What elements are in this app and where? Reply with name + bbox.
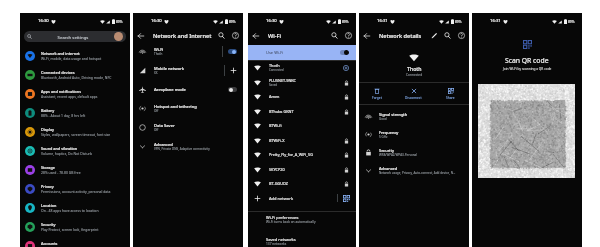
staticText: Mobile network bbox=[154, 66, 185, 71]
staticText: VPN, Private DNS, Adaptive connectivity bbox=[154, 147, 210, 151]
button[interactable]: Share bbox=[432, 83, 469, 104]
button[interactable]: Add network bbox=[248, 191, 356, 205]
staticText: Thoth bbox=[154, 52, 163, 56]
staticText: Off bbox=[154, 128, 159, 132]
staticText: Saved bbox=[269, 83, 278, 87]
button[interactable]: Connected devices bbox=[20, 65, 130, 84]
staticText: 89% bbox=[568, 20, 575, 24]
button[interactable]: BTWi-fi bbox=[248, 118, 356, 133]
button[interactable]: Storage bbox=[20, 160, 130, 179]
staticText: Assistant, recent apps, default apps bbox=[41, 94, 98, 99]
staticText: On - 48 apps have access to location bbox=[41, 208, 99, 213]
button[interactable]: Advanced bbox=[133, 137, 243, 156]
staticText: Forget bbox=[372, 96, 382, 100]
button[interactable]: Privacy bbox=[20, 179, 130, 198]
staticText: BTWi-fi bbox=[269, 123, 282, 128]
staticText: Apps and notifications bbox=[41, 89, 82, 94]
button[interactable]: Pretty_Fly_for_A_WiFi_5G bbox=[248, 147, 356, 162]
button[interactable]: Search bbox=[444, 32, 451, 39]
staticText: Bluetooth, Android Auto, Driving mode, N… bbox=[41, 75, 112, 80]
button[interactable]: Forget bbox=[359, 83, 395, 104]
button[interactable]: Toggle Wi-Fi bbox=[228, 49, 237, 54]
button[interactable]: Apps and notifications bbox=[20, 84, 130, 103]
button[interactable]: Amen bbox=[248, 89, 356, 104]
button[interactable]: Sound and vibration bbox=[20, 141, 130, 160]
staticText: Network and internet bbox=[41, 51, 80, 56]
button[interactable]: Battery bbox=[20, 103, 130, 122]
staticText: Security bbox=[379, 148, 394, 153]
button[interactable]: Security bbox=[359, 143, 469, 161]
button[interactable]: Back bbox=[363, 32, 371, 40]
button[interactable]: Network and internet bbox=[20, 46, 130, 65]
staticText: 89% bbox=[342, 20, 349, 24]
staticText: Wi-Fi bbox=[154, 47, 164, 52]
button[interactable]: Back bbox=[252, 32, 260, 40]
staticText: Network usage, Privacy, Auto-connect, Ad… bbox=[379, 171, 456, 175]
button[interactable]: Add bbox=[230, 67, 237, 74]
button[interactable]: Security bbox=[20, 217, 130, 236]
staticText: Wi-Fi, mobile, data usage and hotspot bbox=[41, 56, 102, 61]
staticText: Aeroplane mode bbox=[154, 87, 186, 92]
button[interactable]: Aeroplane mode bbox=[133, 80, 243, 99]
button[interactable]: Saved networks bbox=[248, 237, 356, 246]
button[interactable]: Advanced bbox=[359, 161, 469, 179]
button[interactable]: BT-GGUDZ bbox=[248, 176, 356, 191]
button[interactable]: Signal strength bbox=[359, 107, 469, 125]
staticText: 137 networks bbox=[266, 242, 287, 246]
staticText: 89% bbox=[455, 20, 462, 24]
staticText: Use Wi-Fi bbox=[266, 50, 340, 55]
button[interactable]: SKYCP20 bbox=[248, 162, 356, 177]
staticText: 16:31 bbox=[377, 18, 388, 24]
button[interactable]: Wi-Fi preferences bbox=[248, 212, 356, 227]
button[interactable]: Wi-Fi bbox=[133, 42, 243, 61]
staticText: BTWiFi-X bbox=[269, 138, 285, 143]
button[interactable]: BThubs GKNT bbox=[248, 104, 356, 119]
button[interactable]: Hotspot and tethering bbox=[133, 99, 243, 118]
staticText: Pretty_Fly_for_A_WiFi_5G bbox=[269, 152, 313, 157]
button[interactable]: Search bbox=[218, 32, 225, 39]
button[interactable]: Use Wi-Fi bbox=[248, 45, 356, 60]
staticText: 88% - About 1 day, 8 hrs left bbox=[41, 113, 86, 118]
staticText: Good bbox=[379, 117, 387, 121]
staticText: 16:30 bbox=[38, 18, 49, 24]
staticText: PLUSNET-9NKC bbox=[269, 78, 297, 83]
button[interactable]: Scan QR code bbox=[343, 195, 350, 202]
staticText: Saved networks bbox=[266, 237, 296, 242]
button[interactable]: PLUSNET-9NKC bbox=[248, 75, 356, 90]
staticText: Security bbox=[41, 222, 56, 227]
button[interactable]: Display bbox=[20, 122, 130, 141]
button[interactable]: Disconnect bbox=[395, 83, 432, 104]
staticText: 89% bbox=[116, 20, 123, 24]
staticText: WPA/WPA2/WPA3-Personal bbox=[379, 153, 418, 157]
staticText: Battery bbox=[41, 108, 55, 113]
button[interactable]: Help bbox=[458, 32, 465, 39]
staticText: 28% used - 78.80 GB free bbox=[41, 170, 81, 175]
button[interactable]: BTWiFi-X bbox=[248, 133, 356, 148]
button[interactable]: Back bbox=[137, 32, 145, 40]
staticText: Share bbox=[446, 96, 455, 100]
button[interactable]: Help bbox=[232, 32, 239, 39]
staticText: Sound and vibration bbox=[41, 146, 78, 151]
button[interactable]: Thoth bbox=[248, 60, 356, 75]
staticText: Join Wi-Fi by scanning a QR code bbox=[503, 67, 552, 71]
staticText: Connected bbox=[406, 73, 423, 77]
button[interactable]: Search bbox=[331, 32, 338, 39]
button[interactable]: Data Saver bbox=[133, 118, 243, 137]
button[interactable]: Accounts bbox=[20, 236, 130, 247]
button[interactable]: Mobile network bbox=[133, 61, 243, 80]
staticText: Volume, haptics, Do Not Disturb bbox=[41, 151, 93, 156]
staticText: Disconnect bbox=[405, 96, 422, 100]
staticText: Amen bbox=[269, 94, 280, 99]
button[interactable]: Search settings bbox=[24, 31, 126, 42]
button[interactable]: Toggle aeroplane mode bbox=[228, 87, 237, 92]
button[interactable]: Location bbox=[20, 198, 130, 217]
staticText: Privacy bbox=[41, 184, 54, 189]
button[interactable]: Frequency bbox=[359, 125, 469, 143]
staticText: Search settings bbox=[32, 34, 114, 40]
button[interactable]: Help bbox=[345, 32, 352, 39]
staticText: Accounts bbox=[41, 241, 58, 246]
staticText: Connected bbox=[269, 68, 284, 72]
staticText: 89% bbox=[229, 20, 236, 24]
staticText: 16:30 bbox=[266, 18, 277, 24]
button[interactable]: Edit bbox=[431, 32, 438, 39]
